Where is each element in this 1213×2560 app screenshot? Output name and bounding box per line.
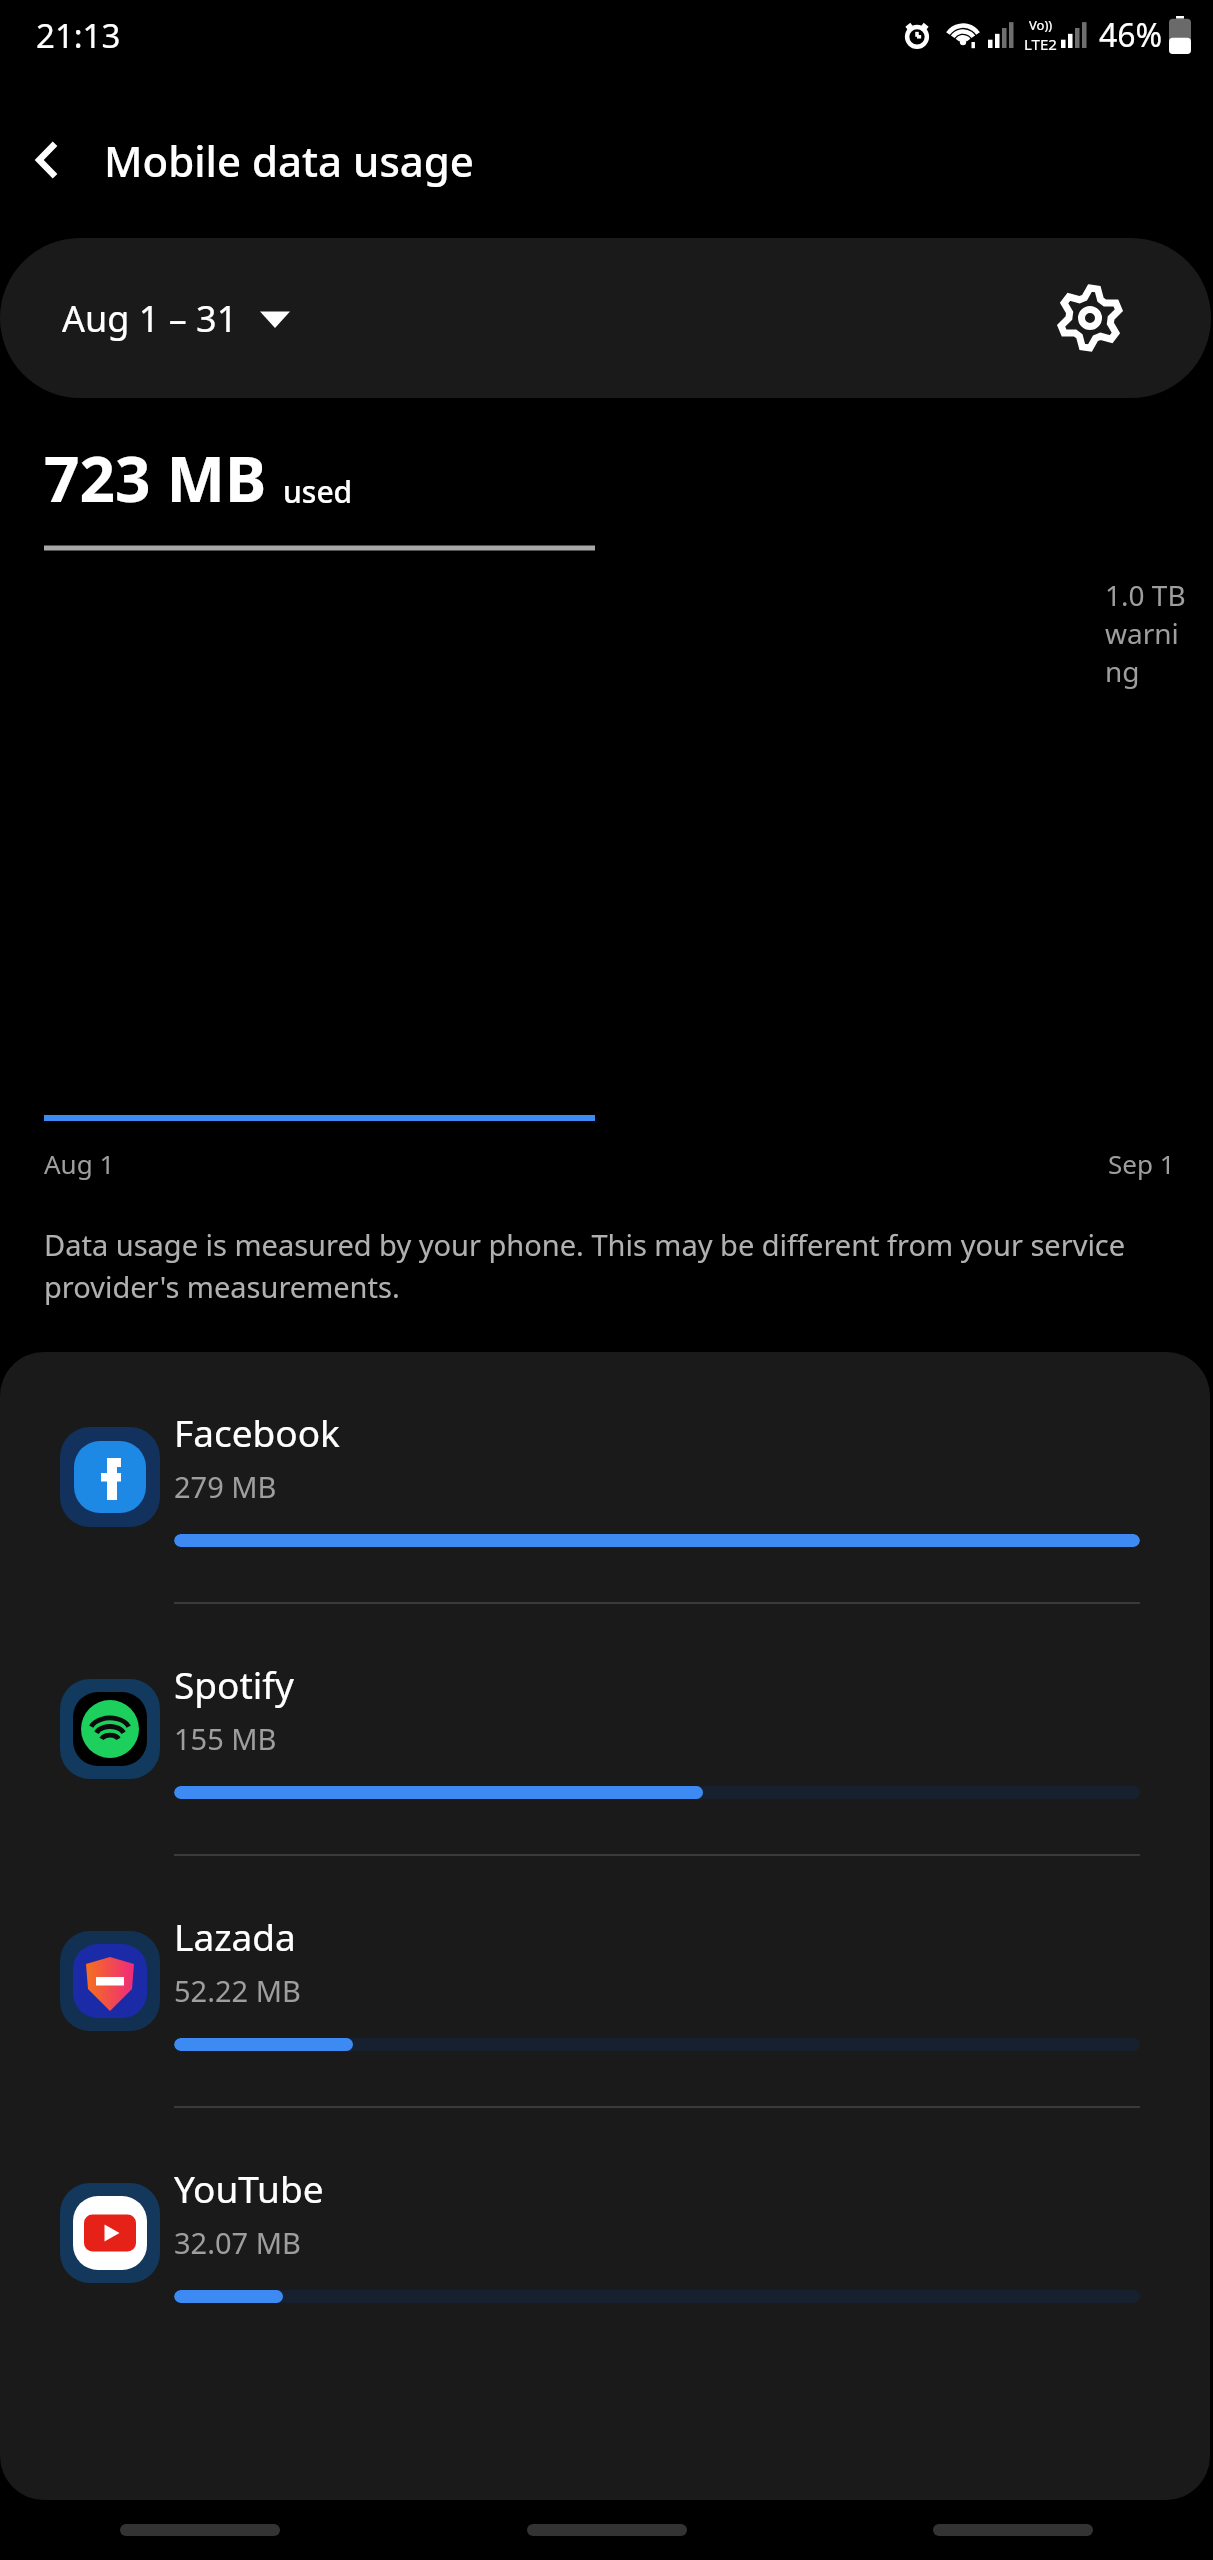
staticText: 52.22 MB <box>174 1971 301 2010</box>
staticText: LTE2 <box>1024 34 1057 54</box>
button[interactable]: Facebook <box>0 1352 1210 1604</box>
staticText: Spotify <box>174 1659 294 1709</box>
staticText: 279 MB <box>174 1467 277 1506</box>
staticText: 46% <box>1099 13 1163 57</box>
staticText: Aug 1 <box>44 1146 115 1181</box>
button[interactable]: YouTube <box>0 2108 1210 2358</box>
button[interactable]: Lazada <box>0 1856 1210 2108</box>
staticText: Vo)) <box>1029 16 1053 34</box>
staticText: used <box>283 471 353 512</box>
staticText: Data usage is measured by your phone. Th… <box>44 1225 1183 1306</box>
staticText: Aug 1 – 31 <box>62 294 238 343</box>
staticText: 1.0 TB <box>1105 576 1186 614</box>
staticText: warning <box>1105 614 1195 690</box>
staticText: 32.07 MB <box>174 2223 301 2262</box>
staticText: Lazada <box>174 1911 296 1961</box>
button[interactable]: Settings <box>1051 279 1129 357</box>
button[interactable]: Back <box>0 112 96 208</box>
staticText: 155 MB <box>174 1719 277 1758</box>
button[interactable]: Aug 1 – 31 <box>50 284 302 353</box>
staticText: Facebook <box>174 1407 340 1457</box>
button[interactable]: Spotify <box>0 1604 1210 1856</box>
staticText: Sep 1 <box>1108 1146 1175 1181</box>
staticText: 21:13 <box>36 13 121 58</box>
staticText: Mobile data usage <box>104 132 474 189</box>
staticText: 723 MB <box>44 436 267 520</box>
staticText: YouTube <box>174 2163 324 2213</box>
